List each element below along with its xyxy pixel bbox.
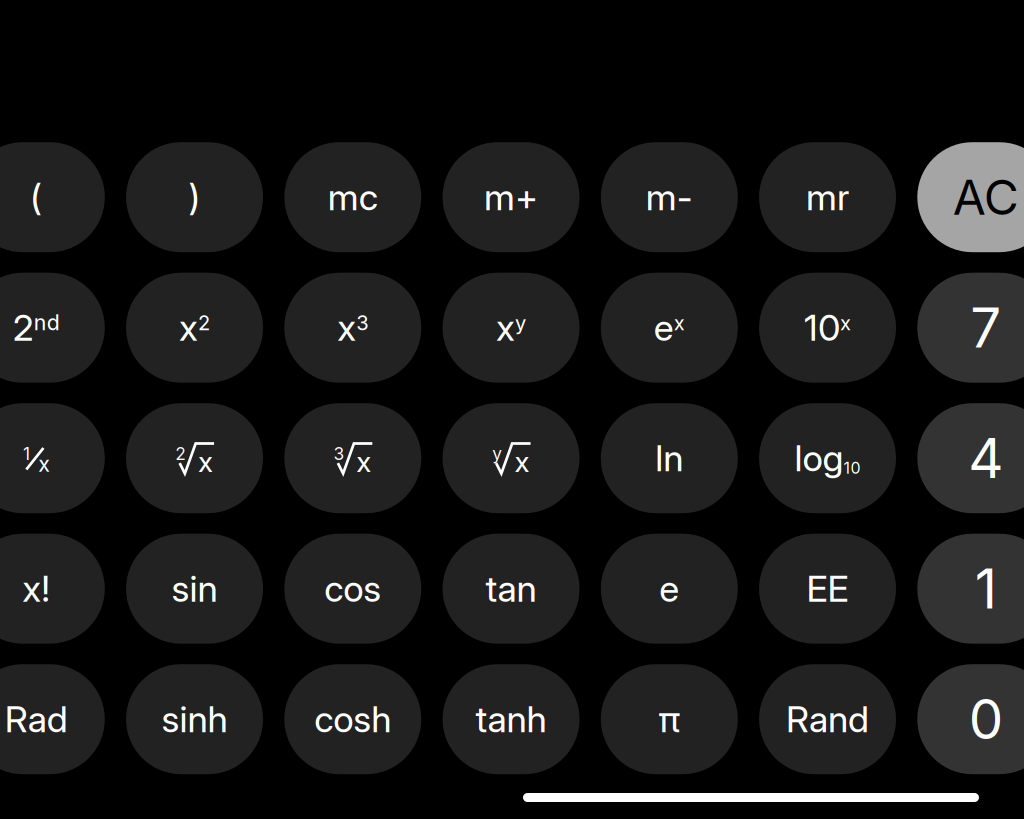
staticText: mc	[328, 175, 378, 219]
button[interactable]: 4	[917, 403, 1024, 513]
button[interactable]: Rand	[759, 664, 896, 774]
button[interactable]: pi	[601, 664, 738, 774]
button[interactable]: 1	[917, 534, 1024, 644]
button[interactable]: x to the power of y	[443, 273, 580, 383]
button[interactable]: sin	[126, 534, 263, 644]
button[interactable]: 1 over x	[0, 403, 105, 513]
staticText: tanh	[476, 697, 547, 741]
button[interactable]: y-th root of x	[443, 403, 580, 513]
button[interactable]: 2nd	[0, 273, 105, 383]
staticText: )	[189, 175, 201, 219]
staticText: 4	[968, 425, 1003, 491]
staticText: 1	[975, 556, 997, 622]
staticText: 7	[970, 295, 1001, 361]
staticText: sin	[172, 567, 218, 610]
staticText: 2nd	[13, 306, 60, 349]
staticText: 3	[334, 443, 345, 464]
button[interactable]: 10 to the power of x	[759, 273, 896, 383]
staticText: tan	[486, 567, 537, 610]
staticText: Rand	[786, 697, 869, 741]
staticText: x	[356, 445, 371, 479]
button[interactable]: Square root of x	[126, 403, 263, 513]
staticText: mr	[806, 175, 849, 219]
staticText: cos	[324, 567, 381, 610]
staticText: x	[514, 445, 529, 479]
button[interactable]: 0	[917, 664, 1024, 774]
button[interactable]: x squared	[126, 273, 263, 383]
button[interactable]: sinh	[126, 664, 263, 774]
button[interactable]: )	[126, 142, 263, 252]
button[interactable]: mr	[759, 142, 896, 252]
staticText: EE	[806, 567, 848, 610]
staticText: x	[38, 451, 50, 477]
staticText: AC	[953, 168, 1019, 226]
button[interactable]: (	[0, 142, 105, 252]
button[interactable]: cosh	[284, 664, 421, 774]
staticText: ln	[655, 436, 683, 480]
staticText: 10x	[804, 306, 851, 349]
button[interactable]: EE	[759, 534, 896, 644]
staticText: sinh	[162, 697, 228, 741]
button[interactable]: 7	[917, 273, 1024, 383]
staticText: x3	[337, 306, 368, 349]
button[interactable]: e	[601, 534, 738, 644]
button[interactable]: tan	[443, 534, 580, 644]
button[interactable]: x cubed	[284, 273, 421, 383]
staticText: m+	[484, 175, 538, 219]
button[interactable]: m-	[601, 142, 738, 252]
staticText: xy	[496, 306, 526, 349]
button[interactable]: log base 10	[759, 403, 896, 513]
staticText: Rad	[5, 697, 68, 741]
staticText: 1	[23, 443, 30, 464]
button[interactable]: m+	[443, 142, 580, 252]
staticText: 0	[969, 686, 1003, 752]
button[interactable]: e to the power of x	[601, 273, 738, 383]
staticText: ex	[654, 306, 685, 349]
staticText: x	[198, 445, 213, 479]
staticText: y	[492, 443, 502, 464]
button[interactable]: tanh	[443, 664, 580, 774]
button[interactable]: mc	[284, 142, 421, 252]
staticText: x2	[179, 306, 210, 349]
staticText: cosh	[314, 697, 391, 741]
staticText: (	[30, 175, 42, 219]
staticText: π	[658, 697, 680, 741]
button[interactable]: x!	[0, 534, 105, 644]
button[interactable]: AC	[917, 142, 1024, 252]
button[interactable]: cos	[284, 534, 421, 644]
staticText: 2	[175, 443, 186, 464]
staticText: x!	[22, 567, 50, 610]
button[interactable]: Rad	[0, 664, 105, 774]
button[interactable]: Cube root of x	[284, 403, 421, 513]
button[interactable]: ln	[601, 403, 738, 513]
staticText: m-	[646, 175, 693, 219]
staticText: log10	[794, 437, 860, 479]
staticText: e	[659, 567, 679, 610]
